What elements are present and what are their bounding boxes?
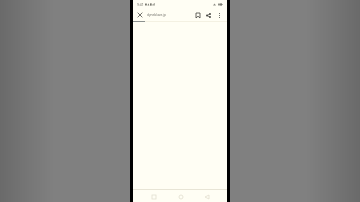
button[interactable]: Recents [148,191,159,202]
button[interactable]: Share [203,10,214,21]
button[interactable]: Bookmark [192,10,203,21]
button[interactable]: More options [214,10,225,21]
button[interactable]: Home [175,191,186,202]
button[interactable]: Close [135,10,145,20]
button[interactable]: Back [201,191,212,202]
staticText: 9:41 [137,2,144,7]
staticText: dyneblaze.jp [147,13,166,17]
